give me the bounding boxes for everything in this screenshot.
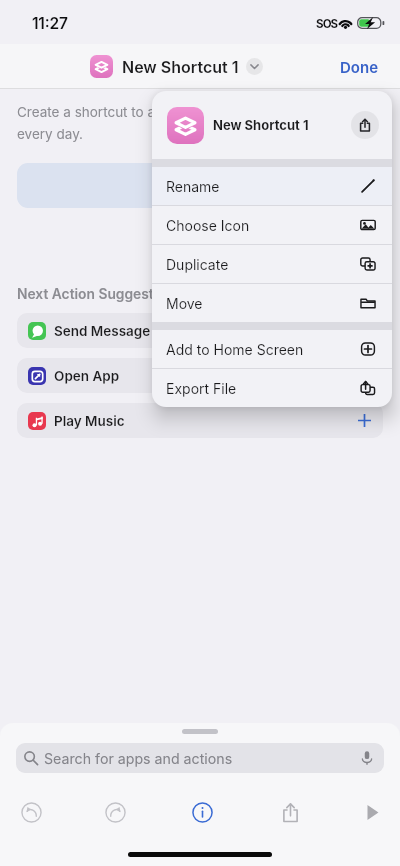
staticText: 11:27 <box>32 14 68 33</box>
button[interactable]: Move <box>152 284 392 322</box>
button[interactable]: Add Action <box>17 163 383 208</box>
button[interactable]: New Shortcut 1 <box>90 55 263 78</box>
staticText: Rename <box>166 178 220 195</box>
staticText: Open App <box>54 368 120 384</box>
button[interactable]: Done <box>340 58 379 76</box>
button[interactable]: New Shortcut 1 <box>167 91 379 159</box>
button[interactable]: Search for apps and actions <box>16 743 384 773</box>
staticText: Duplicate <box>166 256 229 273</box>
button[interactable]: Share <box>351 111 379 139</box>
staticText: Add to Home Screen <box>166 341 304 358</box>
staticText: SOS <box>316 17 338 31</box>
button[interactable]: Details <box>181 791 223 833</box>
staticText: Search for apps and actions <box>44 750 233 767</box>
staticText: Next Action Suggestions <box>17 286 182 303</box>
button[interactable]: Choose Icon <box>152 206 392 244</box>
staticText: Play Music <box>54 413 125 429</box>
staticText: Export File <box>166 380 237 397</box>
button[interactable]: Open App <box>17 358 383 393</box>
staticText: Send Message <box>54 323 151 339</box>
button[interactable]: Duplicate <box>152 245 392 283</box>
staticText: Choose Icon <box>166 217 250 234</box>
staticText: Create a shortcut to automate things you… <box>17 104 298 142</box>
staticText: New Shortcut 1 <box>213 117 309 133</box>
button[interactable]: Export File <box>152 369 392 407</box>
button[interactable]: Send Message <box>17 313 383 348</box>
button[interactable]: Run <box>350 791 392 833</box>
button[interactable]: Redo <box>94 791 136 833</box>
staticText: Move <box>166 295 203 312</box>
button[interactable]: Share <box>269 791 311 833</box>
button[interactable]: Play Music <box>17 403 383 438</box>
button[interactable]: Rename <box>152 167 392 205</box>
staticText: New Shortcut 1 <box>122 57 239 76</box>
staticText: Add Action <box>176 178 248 194</box>
button[interactable]: Add to Home Screen <box>152 330 392 368</box>
button[interactable]: Undo <box>10 791 52 833</box>
